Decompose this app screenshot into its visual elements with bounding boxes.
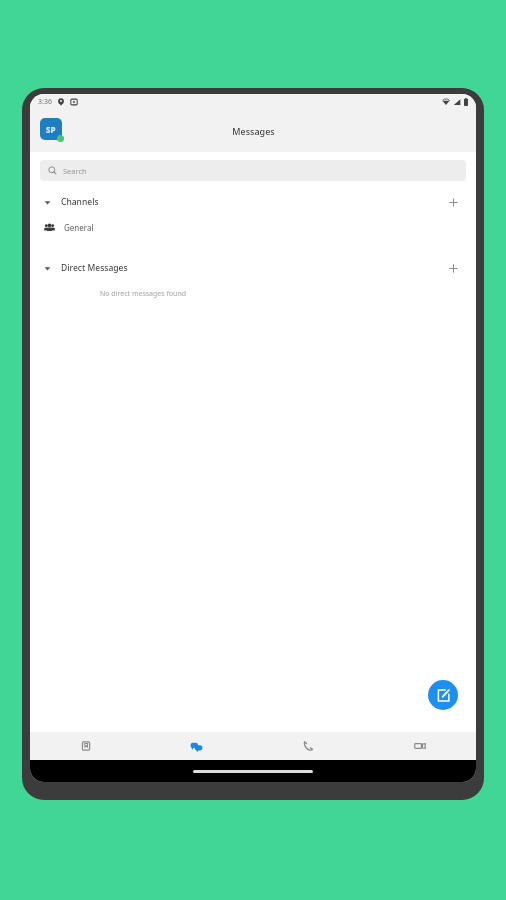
staticText: No direct messages found xyxy=(100,289,187,299)
staticText: Search xyxy=(63,166,87,176)
staticText: SP xyxy=(46,124,56,135)
button[interactable]: Messages xyxy=(141,732,252,760)
button[interactable]: Calls xyxy=(252,732,364,760)
button[interactable]: Add Direct Messages xyxy=(444,259,462,277)
button[interactable]: Compose new message xyxy=(428,680,458,710)
button[interactable]: Search xyxy=(40,160,466,181)
button[interactable]: Add Channels xyxy=(444,193,462,211)
staticText: 3:36 xyxy=(38,97,52,107)
button[interactable]: Profile xyxy=(40,118,66,144)
button[interactable]: General xyxy=(30,215,476,239)
staticText: General xyxy=(64,222,94,233)
button[interactable]: Feed xyxy=(30,732,141,760)
button[interactable]: Direct Messages xyxy=(30,255,476,281)
staticText: Channels xyxy=(61,196,99,208)
button[interactable]: Video xyxy=(364,732,476,760)
staticText: Messages xyxy=(232,125,275,137)
staticText: Direct Messages xyxy=(61,262,128,274)
button[interactable]: Channels xyxy=(30,189,476,215)
